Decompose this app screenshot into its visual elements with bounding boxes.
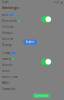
button[interactable]: Bluetooth	[0, 18, 64, 24]
button[interactable]: Enable	[23, 39, 37, 44]
staticText: Wallet	[2, 81, 10, 85]
button[interactable]: Continue	[33, 93, 50, 98]
staticText: Continue	[34, 94, 48, 97]
staticText: Battery	[2, 57, 11, 61]
button[interactable]: Toggle	[41, 16, 51, 22]
staticText: Bluetooth	[2, 19, 17, 23]
staticText: Screen Time	[2, 75, 18, 79]
button[interactable]: Display	[0, 42, 64, 48]
staticText: Display	[2, 43, 11, 47]
button[interactable]: Cellular	[0, 24, 64, 30]
staticText: 9:41	[2, 1, 9, 4]
button[interactable]: Battery	[0, 56, 64, 62]
button[interactable]: Privacy	[0, 50, 64, 56]
staticText: Privacy	[2, 51, 10, 55]
button[interactable]: Wi‑Fi	[0, 12, 64, 18]
staticText: Hotspot	[2, 31, 13, 35]
staticText: Settings	[2, 5, 19, 10]
button[interactable]: Sounds	[0, 62, 64, 68]
button[interactable]: Wallet	[0, 80, 64, 86]
button[interactable]: General	[0, 36, 64, 42]
button[interactable]: Hotspot	[0, 30, 64, 36]
button[interactable]: Passwords	[0, 86, 64, 92]
staticText: Focus	[2, 69, 9, 73]
staticText: Cellular	[2, 25, 13, 29]
staticText: Passwords	[2, 87, 15, 91]
staticText: General	[2, 37, 13, 41]
button[interactable]: Toggle	[41, 58, 51, 65]
button[interactable]: Focus	[0, 68, 64, 74]
button[interactable]: Screen Time	[0, 74, 64, 80]
staticText: ••ıll ▮	[54, 1, 62, 4]
staticText: Wi‑Fi	[2, 13, 8, 17]
staticText: Enable	[25, 40, 34, 44]
staticText: Sounds	[2, 63, 12, 67]
